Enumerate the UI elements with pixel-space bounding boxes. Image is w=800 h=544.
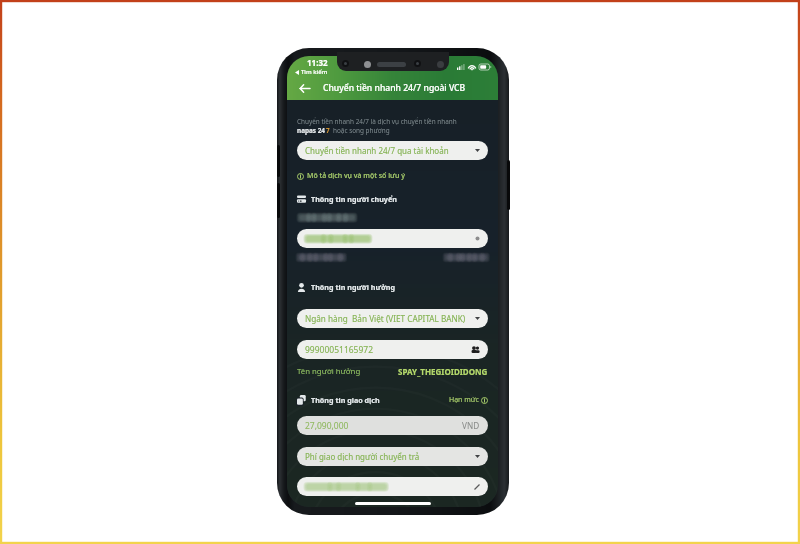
staticText: Thông tin người hưởng — [311, 282, 395, 292]
button[interactable]: Back — [296, 80, 312, 96]
staticText: Thông tin giao dịch — [311, 395, 380, 405]
staticText: Phí giao dịch người chuyển trả — [305, 451, 420, 462]
staticText: Tìm kiếm — [301, 68, 328, 76]
staticText: napas 24 — [297, 126, 326, 135]
staticText: VND — [462, 420, 480, 431]
staticText: Tên người hưởng — [297, 366, 361, 377]
staticText: 27,090,000 — [305, 420, 349, 432]
button[interactable]: Ngân hàng Bản Việt (VIET CAPITAL BANK) — [297, 309, 488, 328]
button[interactable]: 27,090,000 — [297, 416, 488, 435]
button[interactable]: Chuyển tiền nhanh 24/7 qua tài khoản — [297, 141, 488, 160]
staticText: Chuyển tiền nhanh 24/7 là dịch vụ chuyển… — [297, 117, 457, 126]
button[interactable]: Phí giao dịch người chuyển trả — [297, 447, 488, 466]
button[interactable]: Hạn mức — [449, 395, 488, 405]
staticText: Chuyển tiền nhanh 24/7 qua tài khoản — [305, 145, 449, 156]
staticText: 11:32 — [307, 57, 328, 68]
staticText: Chuyển tiền nhanh 24/7 ngoài VCB — [323, 82, 466, 94]
staticText: hoặc song phương — [333, 126, 390, 135]
staticText: 7 — [326, 126, 330, 135]
staticText: 99900051165972 — [305, 344, 374, 356]
staticText: Thông tin người chuyển — [311, 194, 397, 204]
staticText: SPAY_THEGIOIDIDONG — [398, 366, 488, 377]
staticText: Hạn mức — [449, 395, 479, 405]
button[interactable] — [297, 477, 488, 496]
staticText: Mô tả dịch vụ và một số lưu ý — [307, 171, 405, 181]
staticText: Ngân hàng Bản Việt (VIET CAPITAL BANK) — [305, 313, 466, 324]
button[interactable]: Mô tả dịch vụ và một số lưu ý — [297, 171, 405, 181]
button[interactable]: 99900051165972 — [297, 340, 488, 359]
button[interactable] — [297, 229, 488, 248]
